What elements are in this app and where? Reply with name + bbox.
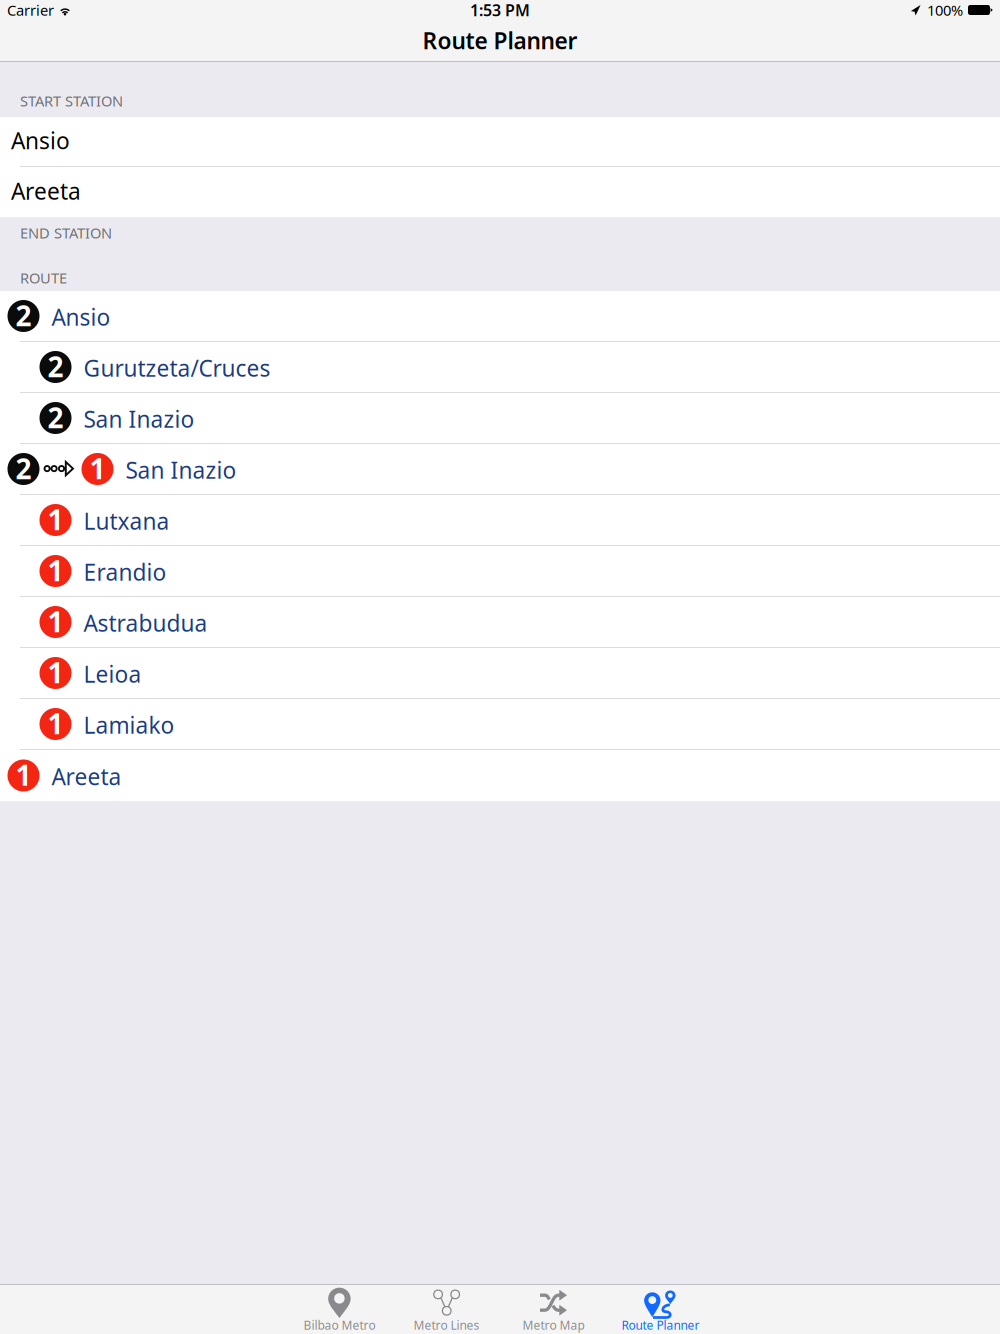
button[interactable]: 1	[0, 546, 1000, 597]
staticText: Lutxana	[83, 506, 169, 536]
staticText: 1	[47, 705, 63, 742]
staticText: 100%	[927, 0, 963, 20]
staticText: 2	[15, 450, 31, 487]
staticText: 1	[89, 450, 105, 487]
button[interactable]: Metro Lines	[393, 1285, 500, 1334]
button[interactable]: Areeta	[0, 167, 1000, 217]
staticText: 2	[15, 297, 31, 334]
button[interactable]: Bilbao Metro	[286, 1285, 393, 1334]
staticText: Route Planner	[621, 1317, 699, 1333]
button[interactable]: Metro Map	[500, 1285, 607, 1334]
staticText: Bilbao Metro	[303, 1317, 375, 1333]
staticText: Gurutzeta/Cruces	[83, 353, 270, 383]
staticText: 2	[47, 348, 63, 385]
staticText: San Inazio	[83, 404, 194, 434]
staticText: 1	[47, 654, 63, 691]
staticText: Astrabudua	[83, 608, 207, 638]
button[interactable]: 2	[0, 393, 1000, 444]
button[interactable]: Route Planner	[607, 1285, 714, 1334]
button[interactable]: 1	[0, 597, 1000, 648]
staticText: ROUTE	[20, 268, 67, 287]
button[interactable]: 2	[0, 291, 1000, 342]
staticText: Metro Map	[522, 1317, 584, 1333]
button[interactable]: 2	[0, 444, 1000, 495]
staticText: Erandio	[83, 557, 166, 587]
button[interactable]: 1	[0, 750, 1000, 801]
staticText: 1	[47, 552, 63, 589]
staticText: Leioa	[83, 659, 141, 689]
staticText: 1	[15, 756, 31, 794]
staticText: Ansio	[51, 302, 110, 332]
staticText: START STATION	[20, 91, 123, 110]
staticText: San Inazio	[125, 455, 236, 485]
staticText: Lamiako	[83, 710, 174, 740]
button[interactable]: 1	[0, 648, 1000, 699]
staticText: Metro Lines	[413, 1317, 479, 1333]
staticText: 1	[47, 603, 63, 640]
staticText: 1	[47, 501, 63, 538]
staticText: 2	[47, 399, 63, 436]
button[interactable]: 1	[0, 699, 1000, 750]
staticText: 1:53 PM	[470, 0, 530, 21]
staticText: END STATION	[20, 223, 112, 242]
button[interactable]: 1	[0, 495, 1000, 546]
staticText: Route Planner	[422, 25, 577, 55]
staticText: Areeta	[11, 176, 81, 206]
staticText: Carrier	[7, 0, 54, 20]
staticText: Areeta	[51, 761, 121, 791]
staticText: Ansio	[11, 125, 70, 155]
button[interactable]: 2	[0, 342, 1000, 393]
button[interactable]: Ansio	[0, 117, 1000, 167]
